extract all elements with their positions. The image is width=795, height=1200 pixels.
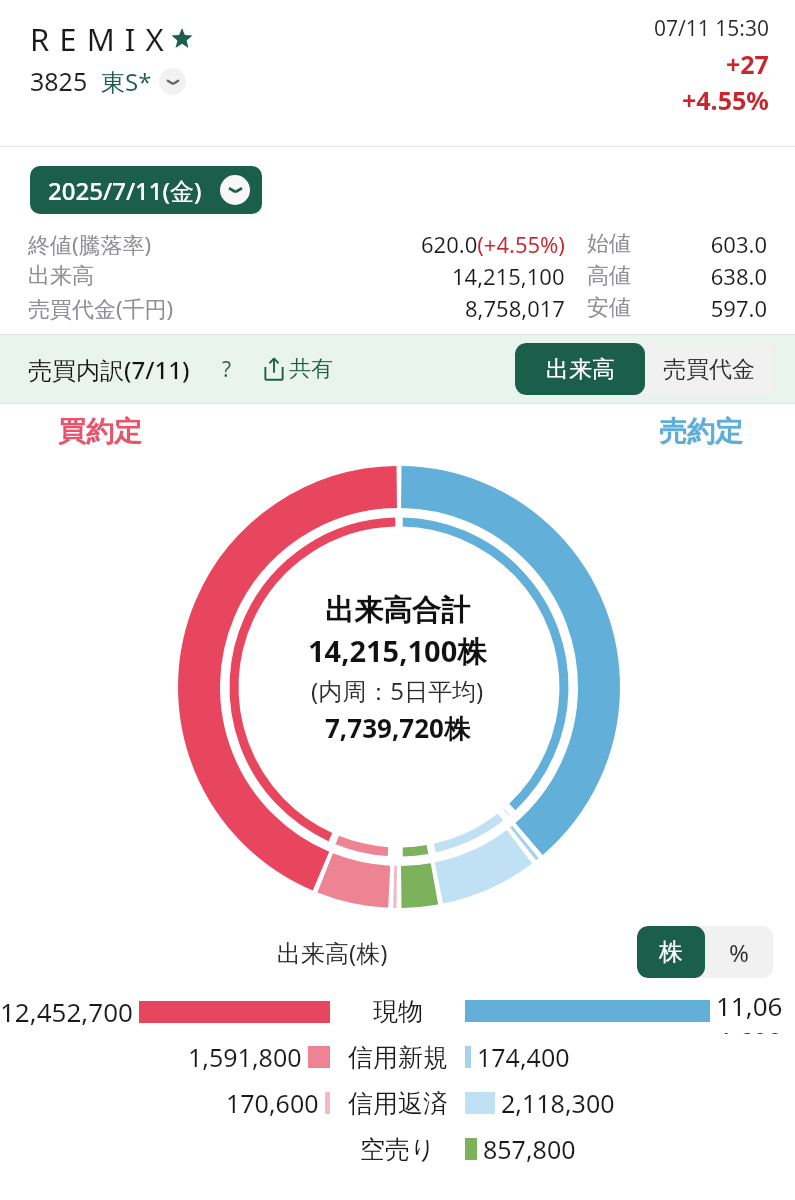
staticText: 出来高合計 [325, 592, 470, 629]
staticText: (内周：5日平均) [311, 674, 484, 707]
button[interactable]: Help [212, 354, 242, 384]
staticText: 売買代金(千円) [28, 293, 203, 323]
staticText: 170,600 [226, 1086, 319, 1120]
staticText: 現物 [373, 996, 423, 1027]
staticText: 597.0 [657, 293, 767, 323]
staticText: 出来高 [546, 355, 615, 384]
staticText: 信用新規 [348, 1042, 448, 1073]
staticText: 8,758,017 [465, 293, 565, 323]
staticText: 終値(騰落率) [28, 229, 203, 259]
staticText: ? [222, 355, 232, 384]
staticText: 11,064,600 [716, 988, 795, 1034]
staticText: 始値 [587, 230, 657, 258]
button[interactable]: 出来高 [515, 343, 645, 395]
staticText: 株 [659, 937, 683, 967]
staticText: 620.0(+4.55%) [421, 229, 565, 259]
staticText: 14,215,100 [452, 261, 565, 291]
staticText: 安値 [587, 294, 657, 322]
staticText: 売買代金 [663, 355, 755, 384]
button[interactable]: % [705, 926, 773, 978]
staticText: 東S* [101, 65, 152, 98]
staticText: 2,118,300 [501, 1086, 615, 1120]
staticText: 共有 [289, 355, 333, 383]
staticText: % [729, 936, 749, 969]
staticText: 857,800 [483, 1132, 576, 1166]
staticText: 信用返済 [348, 1088, 448, 1119]
button[interactable]: Market info [159, 68, 186, 95]
staticText: 買約定 [58, 414, 142, 449]
staticText: +27 [726, 47, 769, 81]
staticText: 空売り [360, 1134, 436, 1165]
staticText: 高値 [587, 262, 657, 290]
staticText: R E M I X [30, 18, 165, 60]
staticText: 638.0 [657, 261, 767, 291]
staticText: 売買内訳(7/11) [28, 353, 190, 386]
staticText: +4.55% [682, 83, 769, 117]
staticText: 2025/7/11(金) [48, 174, 202, 207]
staticText: 7,739,720株 [325, 710, 470, 746]
staticText: 07/11 15:30 [654, 14, 769, 43]
button[interactable]: Favorite [171, 28, 193, 50]
staticText: 売約定 [659, 414, 743, 449]
staticText: 603.0 [657, 229, 767, 259]
staticText: 出来高 [28, 262, 203, 290]
staticText: 174,400 [477, 1040, 570, 1074]
staticText: 14,215,100株 [308, 631, 487, 671]
staticText: 3825 [30, 64, 88, 98]
button[interactable]: 売買代金 [645, 343, 773, 395]
button[interactable]: 2025/7/11(金) [30, 166, 262, 214]
staticText: 1,591,800 [188, 1040, 302, 1074]
button[interactable]: 共有 [258, 351, 337, 387]
staticText: 出来高(株) [277, 936, 388, 969]
staticText: 12,452,700 [0, 994, 133, 1029]
button[interactable]: 株 [637, 926, 705, 978]
